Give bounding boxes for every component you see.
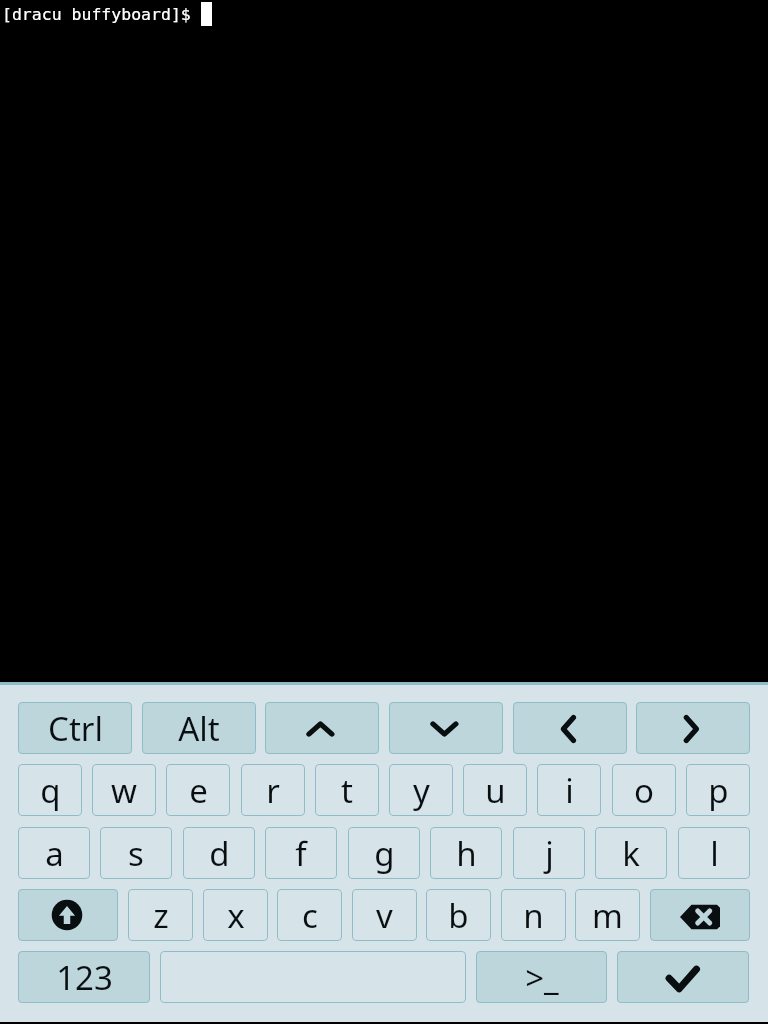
button[interactable]: n [501,889,566,941]
staticText: Alt [178,706,220,751]
button[interactable]: 123 [18,951,150,1003]
button[interactable]: r [241,764,305,816]
staticText: c [302,893,318,938]
button[interactable]: h [430,827,502,879]
button[interactable]: t [315,764,379,816]
staticText: z [153,893,169,938]
button[interactable]: s [100,827,172,879]
staticText: l [710,831,719,876]
button[interactable]: o [612,764,676,816]
button[interactable]: e [166,764,230,816]
button[interactable]: p [686,764,750,816]
staticText: n [523,893,544,938]
button[interactable]: Arrow right [636,702,750,754]
staticText: q [40,768,61,813]
staticText: j [545,831,554,876]
button[interactable]: u [463,764,527,816]
button[interactable]: Enter [617,951,749,1003]
staticText: w [111,768,137,813]
staticText: Ctrl [48,706,103,751]
staticText: o [634,768,654,813]
staticText: t [341,768,353,813]
button[interactable]: w [92,764,156,816]
button[interactable]: >_ [476,951,607,1003]
button[interactable]: a [18,827,90,879]
button[interactable]: Arrow left [513,702,627,754]
button[interactable]: z [128,889,193,941]
staticText: f [295,831,307,876]
staticText: s [128,831,144,876]
staticText: r [266,768,280,813]
staticText: a [45,831,64,876]
staticText: k [622,831,640,876]
button[interactable]: b [426,889,491,941]
staticText: >_ [525,955,559,1000]
button[interactable]: g [348,827,420,879]
button[interactable]: Space [160,951,466,1003]
staticText: e [189,768,208,813]
button[interactable]: Shift [18,889,118,941]
staticText: m [592,893,623,938]
button[interactable]: m [575,889,640,941]
button[interactable]: Backspace [650,889,750,941]
button[interactable]: Arrow up [265,702,379,754]
staticText: b [448,893,469,938]
button[interactable]: Ctrl [18,702,132,754]
button[interactable]: d [183,827,255,879]
staticText: g [374,831,395,876]
button[interactable]: v [352,889,417,941]
button[interactable]: l [678,827,750,879]
staticText: 123 [56,955,113,1000]
button[interactable]: i [537,764,601,816]
button[interactable]: q [18,764,82,816]
staticText: p [708,768,729,813]
staticText: x [227,893,245,938]
staticText: h [456,831,477,876]
staticText: [dracu buffyboard]$ [2,5,201,24]
staticText: u [485,768,506,813]
staticText: i [565,768,574,813]
staticText: d [209,831,230,876]
button[interactable]: c [277,889,342,941]
button[interactable]: x [203,889,268,941]
button[interactable]: y [389,764,453,816]
button[interactable]: f [265,827,337,879]
staticText: y [413,768,430,813]
button[interactable]: k [595,827,667,879]
button[interactable]: j [513,827,585,879]
staticText: v [376,893,393,938]
button[interactable]: Alt [142,702,256,754]
button[interactable]: Arrow down [389,702,503,754]
